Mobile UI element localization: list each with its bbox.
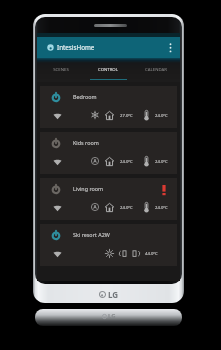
button[interactable]: SCENES — [37, 58, 84, 82]
staticText: Kids room — [73, 139, 99, 146]
staticText: LG — [108, 289, 119, 300]
staticText: IntesisHome — [57, 43, 95, 52]
staticText: 24.0ºC — [155, 205, 168, 211]
staticText: CALENDAR — [145, 66, 167, 72]
staticText: 44.0ºC — [145, 251, 158, 257]
staticText: 24.0ºC — [120, 159, 133, 165]
button[interactable]: Bedroom — [40, 86, 177, 128]
staticText: Living room — [73, 185, 104, 192]
staticText: 27.0ºC — [120, 113, 133, 119]
staticText: Bedroom — [73, 93, 97, 100]
button[interactable]: Kids room — [40, 132, 177, 174]
staticText: CONTROL — [98, 66, 118, 72]
button[interactable]: CALENDAR — [132, 58, 180, 82]
button[interactable]: Living room — [40, 178, 177, 220]
staticText: 24.0ºC — [155, 159, 168, 165]
staticText: 24.0ºC — [155, 113, 168, 119]
button[interactable]: Ski resort A2W — [40, 224, 177, 266]
staticText: LG — [108, 312, 116, 320]
staticText: Ski resort A2W — [73, 231, 110, 238]
staticText: SCENES — [53, 66, 69, 72]
staticText: 24.0ºC — [120, 205, 133, 211]
button[interactable]: CONTROL — [84, 58, 132, 82]
button[interactable]: More options — [163, 37, 177, 58]
